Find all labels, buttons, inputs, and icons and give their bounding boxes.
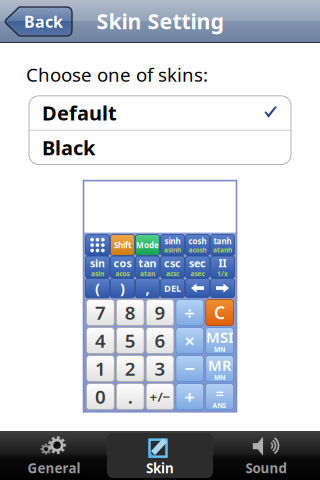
staticText: 0: [95, 384, 106, 409]
staticText: Choose one of skins:: [26, 62, 208, 87]
staticText: ,: [145, 278, 149, 298]
staticText: Default: [42, 99, 117, 126]
staticText: ×: [184, 328, 195, 353]
staticText: Skin Setting: [96, 7, 223, 35]
staticText: atanh: [213, 245, 232, 254]
staticText: C: [214, 301, 225, 324]
staticText: 3: [154, 356, 165, 381]
staticText: cos: [113, 256, 131, 270]
staticText: MR: [208, 355, 231, 375]
staticText: Back: [24, 11, 63, 32]
staticText: +: [184, 384, 195, 409]
staticText: ÷: [184, 300, 195, 325]
staticText: asinh: [164, 245, 181, 254]
staticText: ): [120, 278, 125, 298]
staticText: atan: [140, 269, 155, 278]
staticText: 2: [125, 356, 136, 381]
staticText: 7: [95, 300, 106, 325]
staticText: Sound: [245, 459, 286, 477]
staticText: 1/x: [217, 269, 228, 278]
staticText: asec: [190, 269, 204, 278]
staticText: acsc: [166, 269, 179, 278]
staticText: 1: [95, 356, 106, 381]
staticText: 9: [154, 300, 165, 325]
staticText: acosh: [188, 245, 206, 254]
staticText: 5: [125, 328, 136, 353]
staticText: sin: [90, 256, 105, 270]
staticText: tanh: [213, 236, 231, 246]
button[interactable]: Black: [29, 131, 291, 165]
button[interactable]: Skin: [107, 433, 213, 478]
staticText: −: [184, 356, 195, 381]
staticText: sec: [189, 256, 206, 270]
staticText: MSI: [206, 327, 233, 347]
staticText: (: [95, 278, 100, 298]
staticText: acos: [115, 269, 129, 278]
button[interactable]: Back: [5, 7, 72, 36]
staticText: .: [128, 384, 133, 409]
staticText: csc: [164, 256, 181, 270]
staticText: DEL: [164, 282, 181, 294]
staticText: =: [216, 383, 224, 403]
staticText: II: [218, 256, 226, 270]
staticText: cosh: [188, 236, 206, 246]
staticText: +/−: [149, 388, 170, 405]
staticText: ANS: [213, 401, 227, 410]
button[interactable]: General: [1, 433, 107, 478]
staticText: tan: [138, 256, 156, 270]
staticText: 8: [125, 300, 136, 325]
staticText: Mode: [136, 240, 159, 250]
button[interactable]: Sound: [213, 433, 319, 478]
staticText: Skin: [146, 459, 174, 477]
staticText: 4: [95, 328, 106, 353]
staticText: Shift: [114, 240, 131, 250]
staticText: MN: [214, 345, 225, 354]
staticText: MN: [214, 373, 225, 382]
staticText: 6: [154, 328, 165, 353]
staticText: sinh: [164, 236, 180, 246]
staticText: General: [27, 459, 80, 477]
staticText: asin: [91, 269, 104, 278]
staticText: Black: [42, 134, 95, 161]
button[interactable]: Default: [29, 96, 291, 130]
